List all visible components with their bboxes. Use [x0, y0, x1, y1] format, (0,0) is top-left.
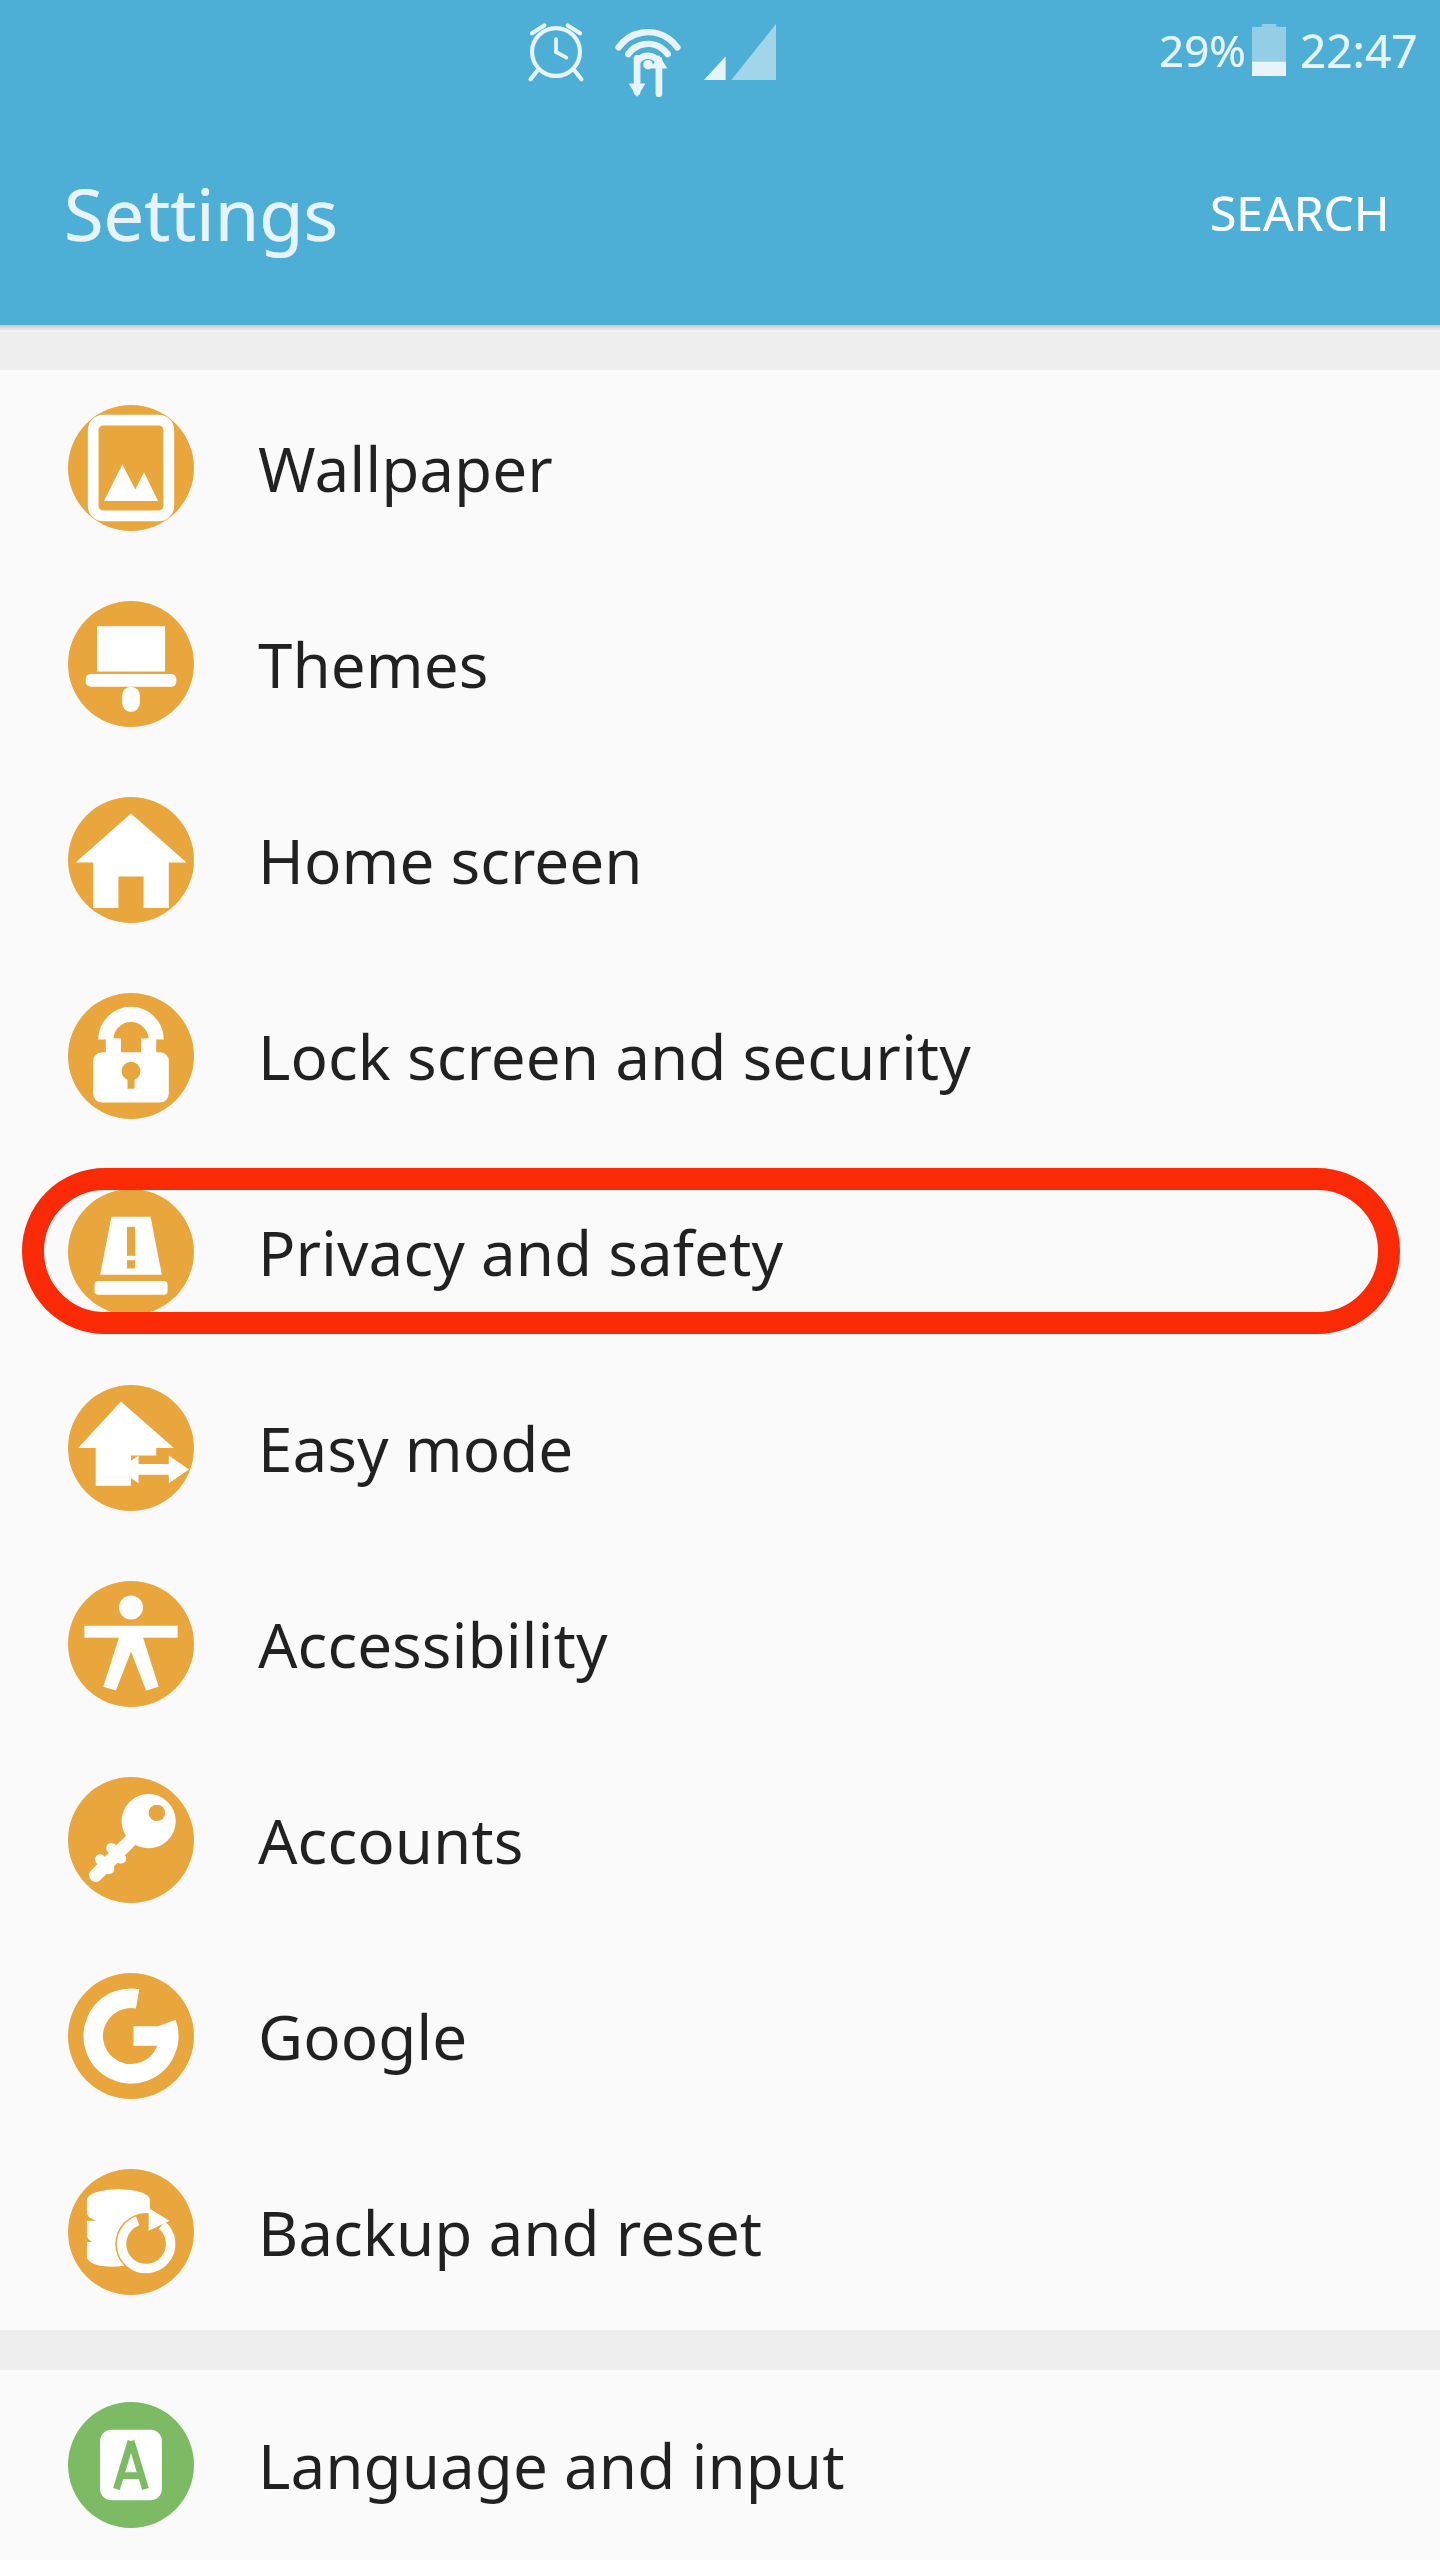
button[interactable]: Lock screen and security	[0, 958, 1440, 1154]
staticText: Wallpaper	[258, 426, 553, 510]
button[interactable]: Backup and reset	[0, 2134, 1440, 2330]
staticText: Accounts	[258, 1798, 524, 1882]
staticText: Home screen	[258, 818, 643, 902]
staticText: Settings	[64, 164, 338, 262]
staticText: Google	[258, 1994, 468, 2078]
button[interactable]: Language and input	[0, 2370, 1440, 2560]
staticText: SEARCH	[1210, 180, 1390, 245]
button[interactable]: Wallpaper	[0, 370, 1440, 566]
button[interactable]: Accessibility	[0, 1546, 1440, 1742]
staticText: Easy mode	[258, 1406, 574, 1490]
button[interactable]: Google	[0, 1938, 1440, 2134]
staticText: Accessibility	[258, 1602, 608, 1686]
button[interactable]: Home screen	[0, 762, 1440, 958]
button[interactable]: Easy mode	[0, 1350, 1440, 1546]
staticText: 22:47	[1300, 19, 1418, 82]
staticText: Backup and reset	[258, 2190, 763, 2274]
staticText: Language and input	[258, 2423, 845, 2507]
button[interactable]: SEARCH	[1160, 144, 1440, 281]
staticText: 29%	[1159, 20, 1246, 80]
button[interactable]: Accounts	[0, 1742, 1440, 1938]
staticText: Themes	[258, 622, 489, 706]
button[interactable]: Themes	[0, 566, 1440, 762]
staticText: Lock screen and security	[258, 1014, 971, 1098]
staticText: Privacy and safety	[258, 1210, 784, 1294]
button[interactable]: Privacy and safety	[0, 1154, 1440, 1350]
